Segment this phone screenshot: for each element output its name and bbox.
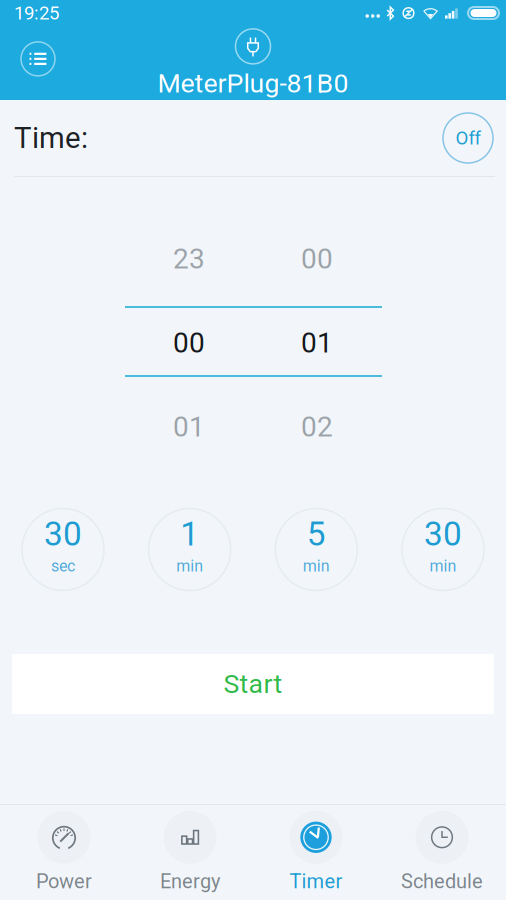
button[interactable]: 30 [22,508,104,590]
staticText: Energy [160,870,220,893]
button[interactable]: 1 [149,508,231,590]
button[interactable]: 30 [402,508,484,590]
staticText: Time: [14,121,88,155]
staticText: 19:25 [14,2,59,24]
button[interactable]: Off [443,113,493,163]
staticText: 5 [307,514,326,554]
staticText: 00 [301,243,333,275]
button[interactable]: Menu [15,36,61,82]
button[interactable]: Power [1,805,127,900]
staticText: Timer [289,870,342,893]
staticText: 01 [301,327,333,359]
staticText: 30 [424,514,462,554]
staticText: min [303,557,330,575]
staticText: Start [223,668,282,700]
button[interactable]: Timer [253,805,379,900]
button[interactable]: Schedule [379,805,505,900]
button[interactable]: Start [12,654,494,714]
staticText: 23 [173,243,205,275]
staticText: Off [455,127,480,149]
staticText: 01 [173,411,205,443]
staticText: min [176,557,203,575]
staticText: Power [36,870,92,893]
staticText: Schedule [401,870,483,893]
button[interactable]: MeterPlug-81B0 [143,29,363,99]
staticText: min [429,557,456,575]
staticText: sec [51,557,75,575]
button[interactable]: Energy [127,805,253,900]
staticText: 30 [44,514,82,554]
staticText: 02 [301,411,333,443]
staticText: 1 [180,514,199,554]
button[interactable]: 5 [275,508,357,590]
staticText: 00 [173,327,205,359]
staticText: MeterPlug-81B0 [157,68,348,99]
